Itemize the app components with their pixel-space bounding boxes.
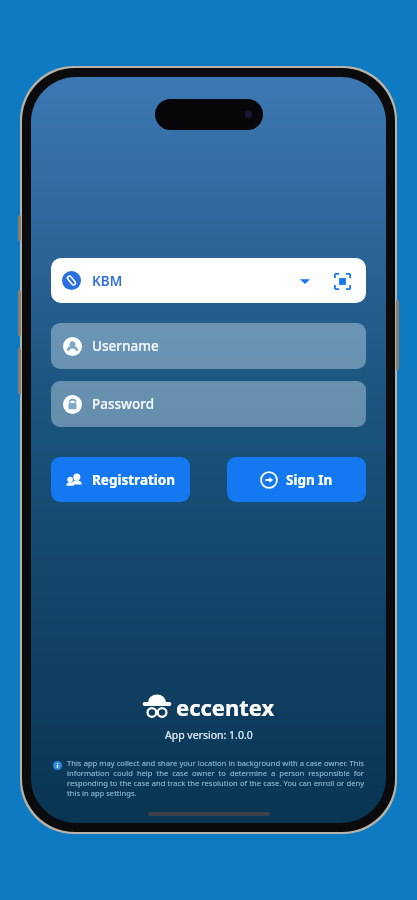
staticText: Sign In	[286, 471, 333, 489]
staticText: eccentex	[176, 692, 275, 722]
button[interactable]: Password	[51, 381, 366, 427]
staticText: Registration	[92, 471, 176, 489]
staticText: Password	[92, 395, 155, 413]
staticText: KBM	[92, 272, 123, 290]
button[interactable]: Scan QR code	[329, 268, 355, 294]
staticText: This app may collect and share your loca…	[67, 758, 364, 798]
staticText: App version: 1.0.0	[165, 728, 253, 742]
staticText: Username	[92, 337, 159, 355]
button[interactable]: Sign In	[227, 457, 366, 502]
button[interactable]: Username	[51, 323, 366, 369]
button[interactable]: KBM	[51, 258, 366, 303]
button[interactable]: Registration	[51, 457, 190, 502]
